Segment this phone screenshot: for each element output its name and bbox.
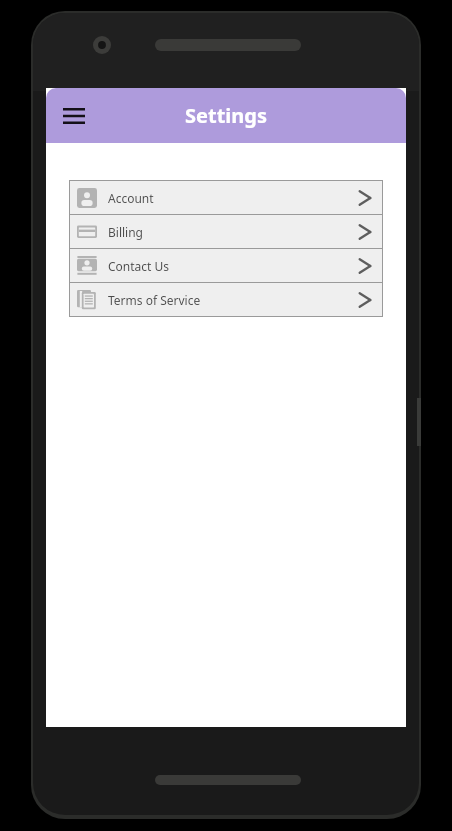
button[interactable]: Billing bbox=[70, 215, 382, 248]
button[interactable]: Terms of Service bbox=[70, 283, 382, 316]
button[interactable]: Account bbox=[70, 181, 382, 214]
button[interactable]: Contact Us bbox=[70, 249, 382, 282]
staticText: Terms of Service bbox=[108, 292, 201, 308]
staticText: Contact Us bbox=[108, 258, 170, 274]
staticText: Settings bbox=[185, 102, 267, 129]
staticText: Billing bbox=[108, 224, 143, 240]
staticText: Account bbox=[108, 190, 154, 206]
button[interactable]: Open navigation menu bbox=[56, 98, 92, 134]
